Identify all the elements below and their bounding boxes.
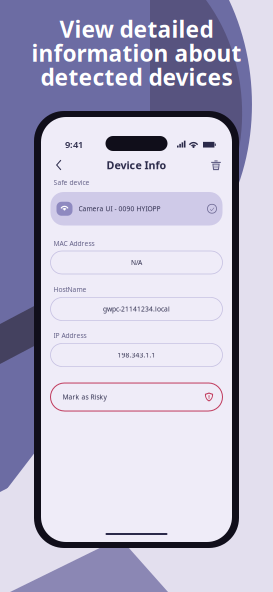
staticText: gwpc-21141234.local — [103, 305, 170, 313]
staticText: MAC Address — [53, 239, 94, 248]
staticText: 198.343.1.1 — [117, 351, 155, 359]
staticText: information about — [31, 38, 241, 68]
staticText: View detailed — [59, 14, 213, 44]
staticText: IP Address — [53, 331, 86, 340]
staticText: Mark as Risky — [62, 393, 106, 401]
staticText: Camera UI - 0090 HYIOPP — [78, 204, 160, 213]
staticText: Safe device — [53, 178, 89, 187]
button[interactable]: Back — [41, 155, 61, 175]
button[interactable]: Camera UI - 0090 HYIOPP — [50, 192, 222, 225]
staticText: 9:41 — [65, 138, 83, 151]
staticText: N/A — [131, 258, 142, 267]
button[interactable]: Delete device — [41, 155, 61, 175]
staticText: Device Info — [106, 158, 166, 172]
staticText: HostName — [53, 285, 86, 294]
button[interactable]: Mark as Risky — [50, 383, 222, 411]
staticText: detected devices — [40, 62, 232, 92]
